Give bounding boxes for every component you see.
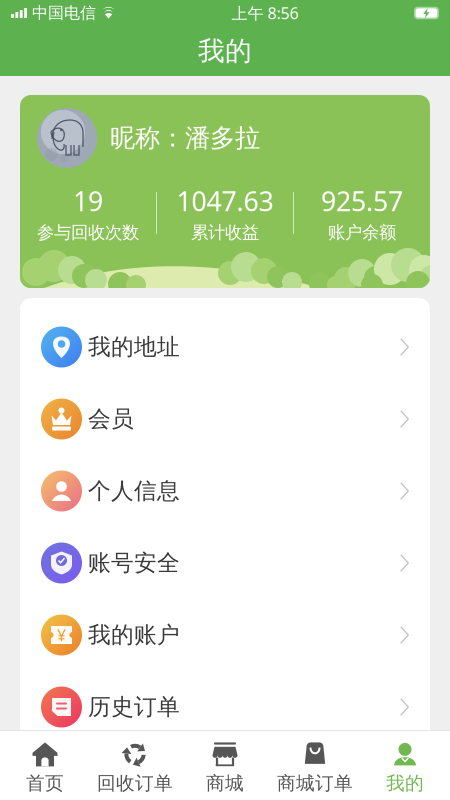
staticText: 账户余额 (328, 222, 396, 243)
staticText: 商城 (206, 772, 244, 795)
staticText: 我的 (386, 772, 424, 795)
staticText: 昵称：潘多拉 (110, 122, 260, 153)
button[interactable]: 回收订单 (90, 731, 180, 800)
button[interactable]: 商城订单 (270, 731, 360, 800)
staticText: 参与回收次数 (37, 222, 139, 243)
staticText: 中国电信 (32, 3, 96, 23)
button[interactable]: 商城 (180, 731, 270, 800)
staticText: 会员 (88, 405, 134, 433)
staticText: 商城订单 (277, 772, 353, 795)
staticText: 1047.63 (176, 183, 273, 219)
staticText: 我的地址 (88, 333, 180, 361)
staticText: 累计收益 (191, 222, 259, 243)
button[interactable]: 首页 (0, 731, 90, 800)
button[interactable]: 账号安全 (20, 527, 430, 599)
button[interactable]: 设置 (20, 743, 430, 800)
staticText: 账号安全 (88, 549, 180, 577)
button[interactable]: 历史订单 (20, 671, 430, 743)
staticText: 首页 (26, 772, 64, 795)
staticText: 回收订单 (97, 772, 173, 795)
staticText: 个人信息 (88, 477, 180, 505)
staticText: 我的账户 (88, 621, 180, 649)
staticText: ¥ (57, 624, 66, 646)
button[interactable]: 我的 (360, 731, 450, 800)
staticText: 我的 (198, 35, 252, 67)
staticText: 上午 8:56 (231, 2, 298, 24)
staticText: 设置 (88, 765, 134, 793)
button[interactable]: 我的地址 (20, 311, 430, 383)
button[interactable]: 个人信息 (20, 455, 430, 527)
button[interactable]: 会员 (20, 383, 430, 455)
button[interactable]: ¥ (20, 599, 430, 671)
staticText: 历史订单 (88, 693, 180, 721)
staticText: 19 (73, 183, 103, 219)
staticText: 925.57 (321, 183, 403, 219)
